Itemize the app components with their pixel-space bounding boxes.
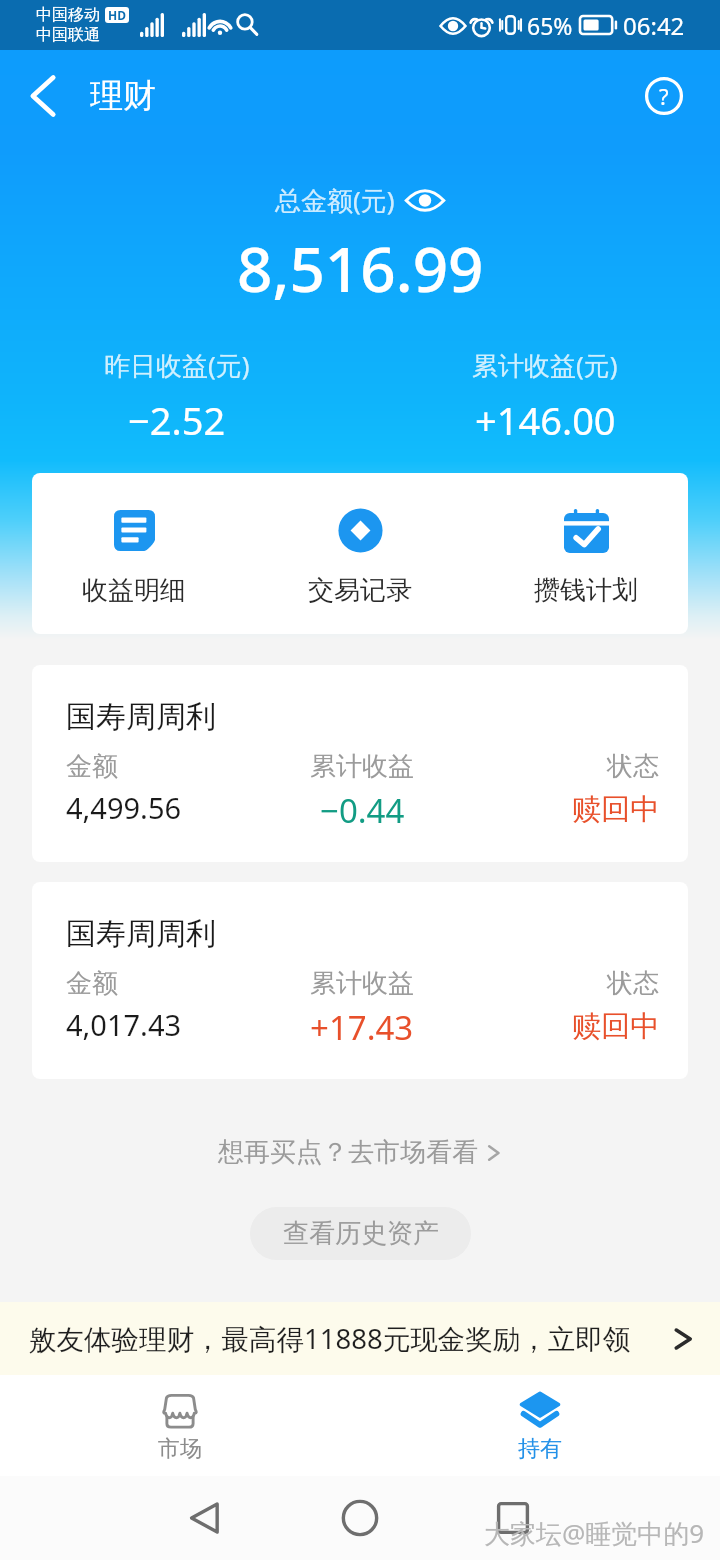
staticText: 攒钱计划 (534, 574, 638, 607)
staticText: 65% (527, 10, 573, 41)
staticText: 持有 (518, 1435, 562, 1463)
staticText: 赎回中 (572, 1008, 659, 1045)
staticText: +17.43 (310, 1005, 414, 1050)
staticText: 06:42 (623, 9, 685, 42)
button[interactable]: 攒钱计划 (534, 500, 638, 607)
button[interactable]: 国寿周周利 (32, 882, 688, 1079)
staticText: 状态 (607, 967, 659, 1000)
staticText: −2.52 (128, 394, 226, 446)
staticText: 赎回中 (572, 791, 659, 828)
button[interactable]: 持有 (360, 1375, 720, 1476)
staticText: 国寿周周利 (66, 698, 216, 736)
staticText: ? (659, 81, 669, 111)
staticText: 交易记录 (308, 574, 412, 607)
staticText: 大家坛@睡觉中的9 (484, 1515, 705, 1551)
button[interactable]: Back (9, 65, 71, 127)
button[interactable]: 想再买点？去市场看看 (0, 1136, 720, 1169)
staticText: 想再买点？去市场看看 (218, 1136, 478, 1169)
staticText: HD (108, 7, 126, 23)
staticText: 市场 (158, 1435, 202, 1463)
button[interactable]: Back (185, 1476, 225, 1560)
staticText: 累计收益 (310, 750, 414, 783)
staticText: 昨日收益(元) (104, 347, 250, 383)
staticText: −0.44 (320, 788, 405, 833)
staticText: +146.00 (475, 394, 616, 446)
staticText: 4,499.56 (66, 788, 182, 827)
staticText: 金额 (66, 750, 118, 783)
staticText: 敫友体验理财，最高得11888元现金奖励，立即领 (29, 1320, 631, 1358)
button[interactable]: 国寿周周利 (32, 665, 688, 862)
button[interactable]: 收益明细 (82, 500, 186, 607)
staticText: 4,017.43 (66, 1005, 182, 1044)
staticText: 8,516.99 (237, 226, 484, 310)
staticText: 累计收益 (310, 967, 414, 1000)
button[interactable]: Recents (493, 1476, 533, 1560)
staticText: 收益明细 (82, 574, 186, 607)
staticText: 国寿周周利 (66, 915, 216, 953)
staticText: 总金额(元) (275, 182, 395, 218)
button[interactable]: Home (340, 1476, 380, 1560)
staticText: 累计收益(元) (472, 347, 618, 383)
staticText: 金额 (66, 967, 118, 1000)
staticText: 中国移动 (36, 5, 100, 25)
staticText: 中国联通 (36, 25, 100, 45)
button[interactable]: 交易记录 (308, 500, 412, 607)
staticText: 理财 (90, 75, 156, 117)
button[interactable]: Help (637, 69, 691, 123)
staticText: 状态 (607, 750, 659, 783)
button[interactable]: 查看历史资产 (250, 1207, 471, 1260)
button[interactable]: 敫友体验理财，最高得11888元现金奖励，立即领 (0, 1302, 720, 1375)
staticText: 查看历史资产 (283, 1217, 439, 1250)
button[interactable]: 总金额(元) (275, 182, 445, 218)
button[interactable]: 市场 (0, 1375, 360, 1476)
